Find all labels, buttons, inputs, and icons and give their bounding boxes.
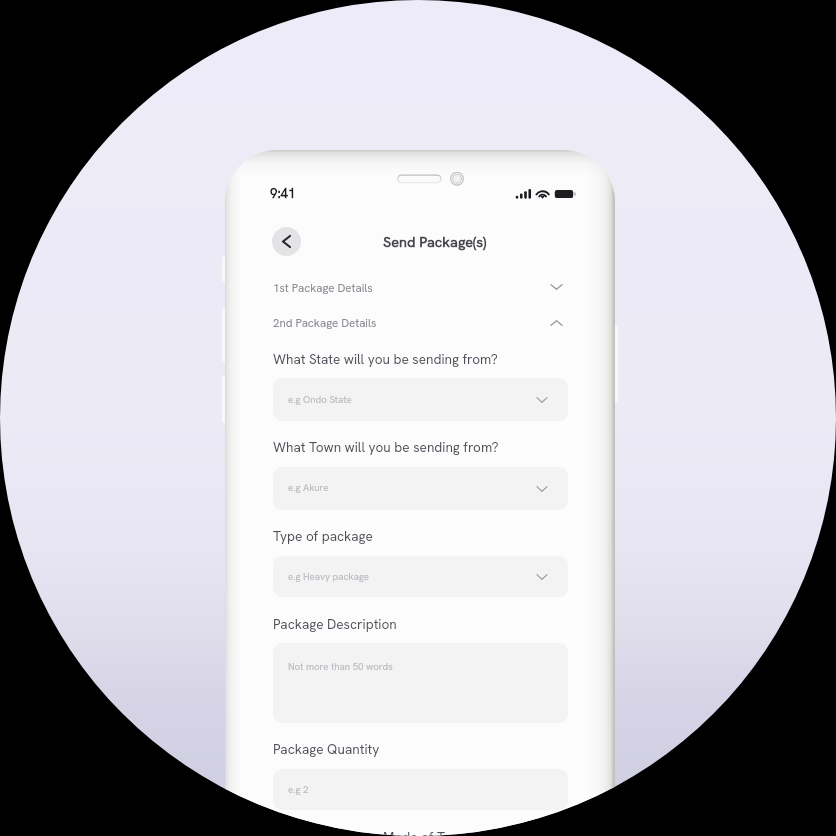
staticText: 1st Package Details — [273, 280, 373, 295]
staticText: e.g Heavy package — [288, 570, 370, 583]
button[interactable]: Back — [272, 227, 301, 256]
staticText: What Town will you be sending from? — [273, 438, 499, 456]
button[interactable]: e.g Heavy package — [273, 556, 568, 597]
button[interactable]: e.g 2 — [273, 769, 568, 810]
button[interactable]: 1st Package Details — [265, 271, 576, 305]
staticText: 2nd Package Details — [273, 315, 377, 330]
staticText: Package Quantity — [273, 740, 380, 758]
staticText: Mode of Transportation — [383, 828, 527, 836]
button[interactable]: e.g Akure — [273, 467, 568, 510]
staticText: e.g Ondo State — [288, 393, 352, 406]
staticText: Package Description — [273, 615, 397, 633]
staticText: 9:41 — [270, 185, 296, 202]
staticText: What State will you be sending from? — [273, 350, 498, 368]
button[interactable]: Not more than 50 words — [273, 643, 568, 723]
staticText: Send Package(s) — [383, 232, 487, 251]
staticText: Type of package — [273, 527, 373, 545]
button[interactable]: 2nd Package Details — [265, 306, 576, 340]
staticText: e.g Akure — [288, 481, 329, 494]
staticText: e.g 2 — [288, 783, 309, 796]
button[interactable]: e.g Ondo State — [273, 378, 568, 421]
staticText: Not more than 50 words — [288, 660, 393, 673]
